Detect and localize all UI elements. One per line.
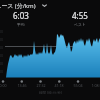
staticText: 13:46 [17,83,27,88]
staticText: 1:08:50 [91,83,100,88]
staticText: ペース (分/km) [0,2,36,10]
staticText: 平均 [17,22,25,27]
staticText: 9:00 [0,69,4,74]
button[interactable]: ペース (分/km) [0,1,48,10]
staticText: 8:00 [0,61,4,66]
staticText: 27:32 [36,83,46,88]
staticText: 0:00 [0,83,7,88]
staticText: 41:18 [54,83,64,88]
staticText: 55:04 [73,83,83,88]
staticText: ベスト [74,22,86,27]
staticText: 4:00 [0,29,4,34]
staticText: 6:00 [0,45,4,50]
staticText: 6:03 [13,10,29,21]
staticText: 4:55 [72,10,88,21]
staticText: 時間 (時:分:秒) [39,90,62,95]
staticText: 7:00 [0,53,4,58]
other: Expand [41,2,48,9]
staticText: 5:00 [0,37,4,42]
